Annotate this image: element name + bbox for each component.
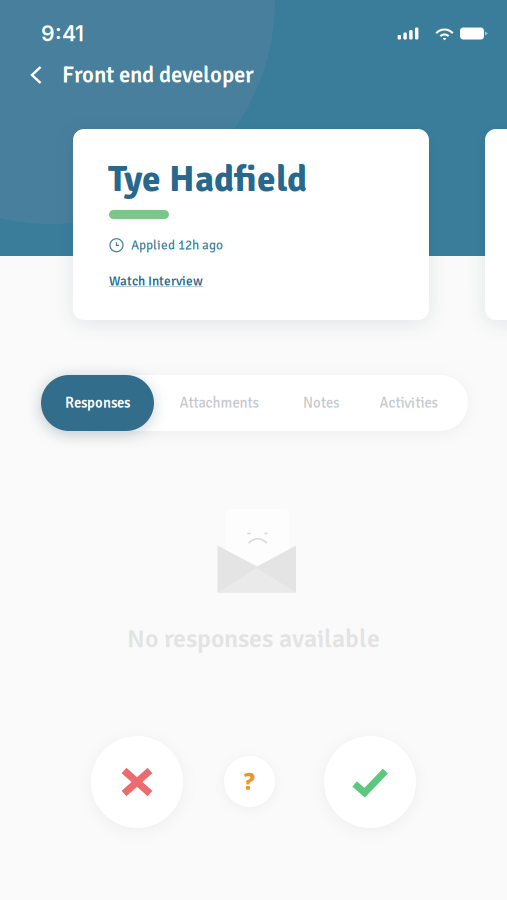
staticText: No responses available	[127, 623, 380, 655]
staticText: Watch Interview	[109, 273, 203, 289]
button[interactable]: Reject	[91, 736, 183, 828]
button[interactable]: Back	[20, 56, 52, 94]
button[interactable]: Activities	[361, 375, 456, 431]
button[interactable]: Notes	[281, 375, 361, 431]
staticText: 9:41	[41, 21, 84, 46]
staticText: Activities	[379, 394, 437, 412]
staticText: Notes	[303, 394, 339, 412]
button[interactable]: Responses	[41, 375, 154, 431]
button[interactable]: Accept	[324, 736, 416, 828]
staticText: Tye Hadfield	[108, 156, 307, 202]
button[interactable]: Attachments	[169, 375, 269, 431]
staticText: Front end developer	[62, 61, 254, 89]
staticText: Responses	[65, 394, 130, 412]
button[interactable]: Maybe	[224, 756, 275, 807]
staticText: ?	[244, 766, 255, 797]
staticText: Applied 12h ago	[131, 237, 223, 253]
button[interactable]: Watch Interview	[109, 273, 203, 289]
staticText: Attachments	[179, 394, 258, 412]
